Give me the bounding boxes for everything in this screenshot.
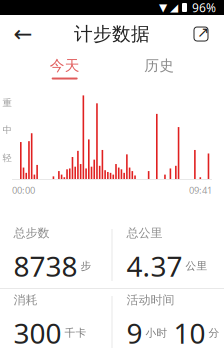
staticText: 历史 — [144, 56, 174, 74]
staticText: ← — [13, 21, 32, 47]
staticText: 9 — [126, 314, 142, 351]
staticText: 总步数 — [13, 225, 49, 240]
staticText: 00:00 — [12, 184, 35, 196]
staticText: 千卡 — [64, 326, 86, 339]
staticText: 重 — [2, 97, 11, 109]
staticText: 中 — [2, 124, 11, 136]
staticText: 消耗 — [13, 292, 37, 307]
button[interactable]: 今天 — [35, 54, 95, 82]
staticText: ↗ — [197, 24, 209, 41]
staticText: ▼ — [159, 1, 167, 13]
staticText: 09:41 — [189, 184, 212, 196]
staticText: 公里 — [185, 259, 207, 272]
button[interactable]: 历史 — [129, 54, 189, 82]
staticText: 总公里 — [126, 225, 162, 240]
staticText: 活动时间 — [126, 292, 174, 307]
staticText: 今天 — [50, 56, 80, 74]
staticText: 轻 — [2, 152, 11, 164]
staticText: 4.37 — [126, 247, 182, 284]
staticText: 小时 — [145, 326, 167, 339]
staticText: 96% — [192, 0, 216, 15]
staticText: 8738 — [13, 247, 77, 284]
staticText: 计步数据 — [74, 22, 150, 45]
button[interactable]: 分享 — [184, 18, 218, 50]
button[interactable]: 返回 — [6, 18, 40, 50]
staticText: 分 — [208, 326, 219, 339]
staticText: ◢ — [170, 1, 178, 13]
staticText: 步 — [80, 259, 91, 272]
staticText: 300 — [13, 314, 61, 351]
staticText: 10 — [173, 314, 205, 351]
